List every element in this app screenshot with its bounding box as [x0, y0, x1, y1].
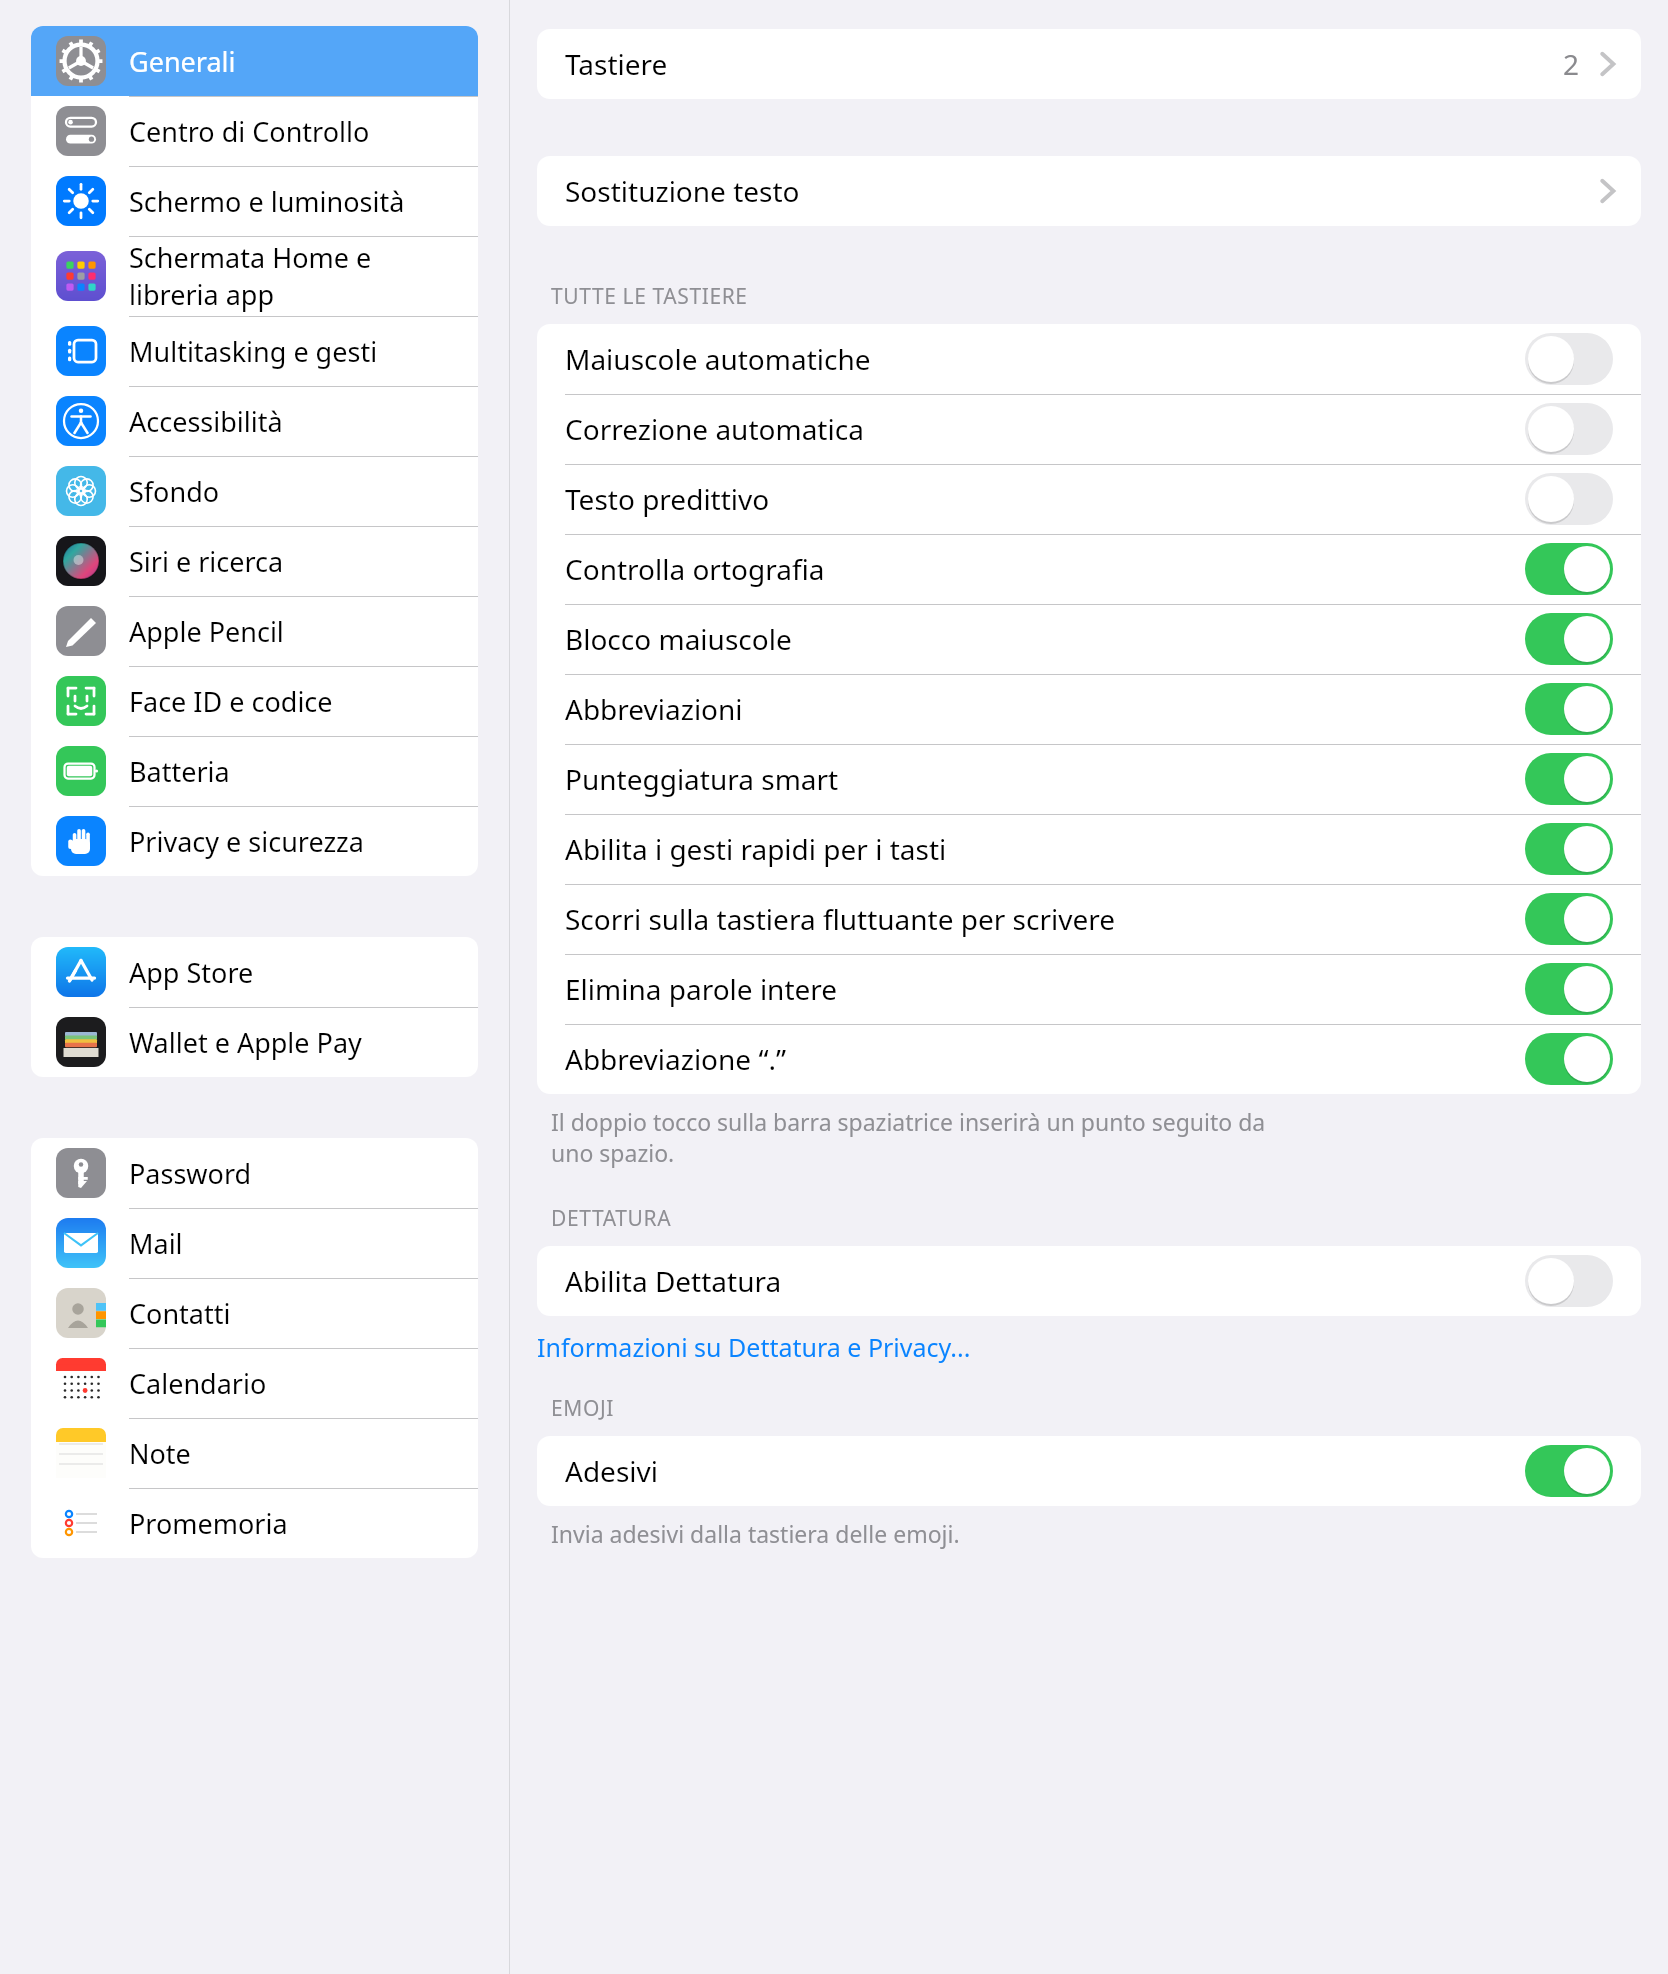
- staticText: Informazioni su Dettatura e Privacy...: [537, 1330, 971, 1364]
- button[interactable]: Promemoria: [31, 1488, 478, 1558]
- button[interactable]: On: [1525, 1445, 1613, 1497]
- button[interactable]: Privacy e sicurezza: [31, 806, 478, 876]
- button[interactable]: Blocco maiuscole: [537, 604, 1641, 674]
- button[interactable]: Off: [1525, 333, 1613, 385]
- staticText: Calendario: [129, 1365, 267, 1402]
- button[interactable]: Elimina parole intere: [537, 954, 1641, 1024]
- button[interactable]: Schermo e luminosità: [31, 166, 478, 236]
- staticText: Wallet e Apple Pay: [129, 1024, 362, 1061]
- staticText: Schermo e luminosità: [129, 183, 405, 220]
- staticText: Controlla ortografia: [565, 550, 825, 588]
- button[interactable]: Mail: [31, 1208, 478, 1278]
- button[interactable]: Abilita i gesti rapidi per i tasti: [537, 814, 1641, 884]
- button[interactable]: Abbreviazioni: [537, 674, 1641, 744]
- button[interactable]: Generali: [31, 26, 478, 96]
- button[interactable]: Contatti: [31, 1278, 478, 1348]
- staticText: Tastiere: [565, 45, 668, 83]
- button[interactable]: Off: [1525, 1255, 1613, 1307]
- button[interactable]: Siri e ricerca: [31, 526, 478, 596]
- staticText: DETTATURA: [551, 1204, 672, 1233]
- staticText: Multitasking e gesti: [129, 333, 378, 370]
- button[interactable]: Password: [31, 1138, 478, 1208]
- button[interactable]: App Store: [31, 937, 478, 1007]
- button[interactable]: On: [1525, 1033, 1613, 1085]
- staticText: Elimina parole intere: [565, 970, 838, 1008]
- staticText: Scorri sulla tastiera fluttuante per scr…: [565, 900, 1116, 938]
- staticText: Note: [129, 1435, 191, 1472]
- staticText: Privacy e sicurezza: [129, 823, 364, 860]
- staticText: Face ID e codice: [129, 683, 333, 720]
- button[interactable]: Sostituzione testo: [537, 156, 1641, 226]
- button[interactable]: Scorri sulla tastiera fluttuante per scr…: [537, 884, 1641, 954]
- button[interactable]: Accessibilità: [31, 386, 478, 456]
- staticText: Abbreviazione “.”: [565, 1040, 787, 1078]
- staticText: Contatti: [129, 1295, 231, 1332]
- button[interactable]: Informazioni su Dettatura e Privacy...: [537, 1330, 971, 1364]
- button[interactable]: Wallet e Apple Pay: [31, 1007, 478, 1077]
- button[interactable]: Schermata Home e libreria app: [31, 236, 478, 316]
- staticText: Blocco maiuscole: [565, 620, 792, 658]
- button[interactable]: Testo predittivo: [537, 464, 1641, 534]
- staticText: Batteria: [129, 753, 230, 790]
- button[interactable]: On: [1525, 753, 1613, 805]
- staticText: Password: [129, 1155, 252, 1192]
- button[interactable]: Punteggiatura smart: [537, 744, 1641, 814]
- button[interactable]: Maiuscole automatiche: [537, 324, 1641, 394]
- staticText: Accessibilità: [129, 403, 283, 440]
- button[interactable]: Calendario: [31, 1348, 478, 1418]
- staticText: EMOJI: [551, 1394, 614, 1423]
- button[interactable]: Note: [31, 1418, 478, 1488]
- button[interactable]: Multitasking e gesti: [31, 316, 478, 386]
- staticText: Schermata Home e libreria app: [129, 239, 372, 313]
- staticText: TUTTE LE TASTIERE: [551, 282, 748, 311]
- staticText: Sfondo: [129, 473, 220, 510]
- staticText: Siri e ricerca: [129, 543, 284, 580]
- staticText: Generali: [129, 43, 236, 80]
- button[interactable]: On: [1525, 543, 1613, 595]
- button[interactable]: Off: [1525, 403, 1613, 455]
- button[interactable]: Correzione automatica: [537, 394, 1641, 464]
- button[interactable]: Batteria: [31, 736, 478, 806]
- staticText: Punteggiatura smart: [565, 760, 839, 798]
- staticText: Abbreviazioni: [565, 690, 743, 728]
- staticText: 2: [1563, 45, 1580, 83]
- staticText: Abilita i gesti rapidi per i tasti: [565, 830, 947, 868]
- button[interactable]: Abilita Dettatura: [537, 1246, 1641, 1316]
- button[interactable]: Tastiere: [537, 29, 1641, 99]
- button[interactable]: On: [1525, 893, 1613, 945]
- button[interactable]: Centro di Controllo: [31, 96, 478, 166]
- staticText: App Store: [129, 954, 254, 991]
- staticText: Apple Pencil: [129, 613, 284, 650]
- button[interactable]: Controlla ortografia: [537, 534, 1641, 604]
- button[interactable]: On: [1525, 613, 1613, 665]
- staticText: Mail: [129, 1225, 183, 1262]
- button[interactable]: Face ID e codice: [31, 666, 478, 736]
- staticText: Il doppio tocco sulla barra spaziatrice …: [551, 1106, 1266, 1169]
- button[interactable]: Abbreviazione “.”: [537, 1024, 1641, 1094]
- button[interactable]: On: [1525, 683, 1613, 735]
- staticText: Abilita Dettatura: [565, 1262, 782, 1300]
- button[interactable]: Adesivi: [537, 1436, 1641, 1506]
- button[interactable]: Off: [1525, 473, 1613, 525]
- button[interactable]: On: [1525, 823, 1613, 875]
- staticText: Sostituzione testo: [565, 172, 800, 210]
- button[interactable]: On: [1525, 963, 1613, 1015]
- staticText: Promemoria: [129, 1505, 288, 1542]
- button[interactable]: Sfondo: [31, 456, 478, 526]
- staticText: Adesivi: [565, 1452, 658, 1490]
- staticText: Correzione automatica: [565, 410, 864, 448]
- staticText: Maiuscole automatiche: [565, 340, 871, 378]
- button[interactable]: Apple Pencil: [31, 596, 478, 666]
- staticText: Centro di Controllo: [129, 113, 370, 150]
- staticText: Testo predittivo: [565, 480, 770, 518]
- staticText: Invia adesivi dalla tastiera delle emoji…: [551, 1518, 960, 1549]
